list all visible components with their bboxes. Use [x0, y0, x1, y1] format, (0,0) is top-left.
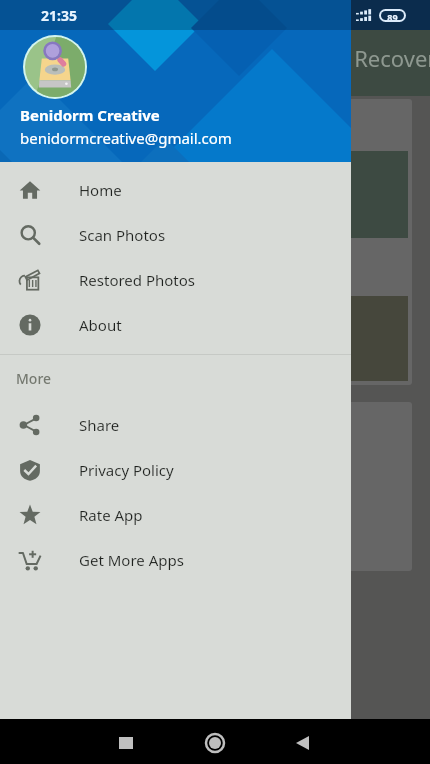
button[interactable]: About	[0, 302, 351, 347]
staticText: About	[79, 315, 122, 335]
staticText: Scan Photos	[79, 225, 166, 245]
button[interactable]: Share	[0, 402, 351, 447]
staticText: Share	[79, 415, 120, 435]
staticText: Photo Recovery	[287, 43, 430, 73]
button[interactable]: Scan Photos	[0, 212, 351, 257]
staticText: Privacy Policy	[79, 460, 174, 480]
staticText: Home	[79, 180, 122, 200]
button[interactable]: Restored Photos	[0, 257, 351, 302]
button[interactable]: Home	[0, 167, 351, 212]
staticText: Restored Photos	[79, 270, 196, 290]
staticText: Get More Apps	[79, 550, 184, 570]
staticText: benidormcreative@gmail.com	[20, 128, 232, 148]
button[interactable]: Get More Apps	[0, 537, 351, 582]
button[interactable]: Rate App	[0, 492, 351, 537]
staticText: 21:35	[41, 6, 77, 25]
staticText: Benidorm Creative	[20, 105, 160, 125]
staticText: More	[16, 369, 52, 388]
staticText: Rate App	[79, 505, 143, 525]
button[interactable]: Privacy Policy	[0, 447, 351, 492]
staticText: 89	[387, 11, 398, 20]
